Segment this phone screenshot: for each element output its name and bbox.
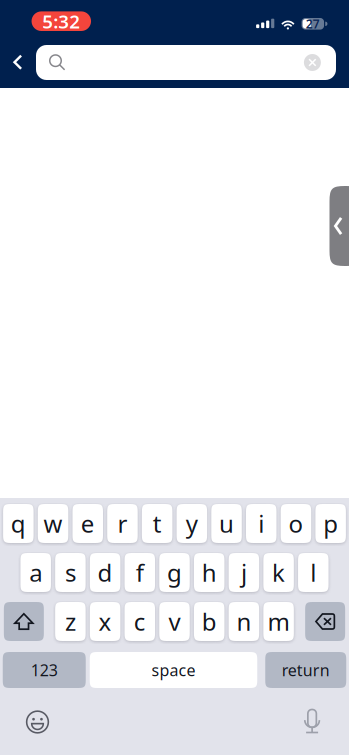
staticText: r	[117, 508, 127, 539]
button[interactable]: Delete	[305, 602, 345, 641]
staticText: q	[11, 508, 26, 539]
button[interactable]: n	[229, 602, 259, 641]
button[interactable]: s	[55, 553, 86, 592]
staticText: z	[65, 606, 76, 637]
staticText: space	[151, 659, 195, 681]
button[interactable]: g	[159, 553, 190, 592]
button[interactable]: q	[3, 504, 34, 543]
button[interactable]: 123	[3, 652, 86, 688]
staticText: p	[323, 508, 338, 539]
button[interactable]: Shift	[4, 602, 44, 641]
staticText: 5:32	[42, 9, 80, 34]
button[interactable]: e	[72, 504, 103, 543]
button[interactable]: f	[124, 553, 155, 592]
staticText: s	[65, 557, 76, 588]
button[interactable]: Emoji	[18, 703, 56, 741]
button[interactable]: k	[263, 553, 294, 592]
staticText: i	[258, 508, 264, 539]
staticText: v	[168, 606, 180, 637]
button[interactable]: z	[55, 602, 86, 641]
staticText: b	[202, 606, 217, 637]
staticText: f	[136, 557, 144, 588]
button[interactable]: t	[142, 504, 172, 543]
button[interactable]: b	[194, 602, 224, 641]
staticText: y	[186, 508, 198, 539]
button[interactable]: h	[194, 553, 224, 592]
button[interactable]: x	[90, 602, 120, 641]
staticText: m	[268, 606, 290, 637]
staticText: l	[310, 557, 316, 588]
staticText: x	[99, 606, 112, 637]
button[interactable]: w	[38, 504, 68, 543]
staticText: c	[134, 606, 146, 637]
button[interactable]: c	[124, 602, 155, 641]
button[interactable]: space	[90, 652, 257, 688]
button[interactable]: p	[315, 504, 346, 543]
staticText: t	[153, 508, 162, 539]
staticText: a	[29, 557, 42, 588]
button[interactable]: v	[159, 602, 190, 641]
button[interactable]: i	[246, 504, 276, 543]
staticText: e	[81, 508, 95, 539]
staticText: 27	[306, 16, 320, 32]
staticText: h	[202, 557, 217, 588]
staticText: 123	[31, 659, 58, 681]
staticText: g	[167, 557, 182, 588]
staticText: return	[282, 659, 330, 681]
button[interactable]: d	[90, 553, 120, 592]
button[interactable]: y	[177, 504, 207, 543]
button[interactable]: l	[298, 553, 328, 592]
button[interactable]: o	[281, 504, 311, 543]
button[interactable]: m	[263, 602, 294, 641]
button[interactable]: Back	[1, 45, 35, 79]
button[interactable]: Dictation	[293, 702, 331, 740]
button[interactable]: u	[211, 504, 242, 543]
staticText: d	[98, 557, 113, 588]
button[interactable]: return	[265, 652, 346, 688]
button[interactable]: j	[229, 553, 259, 592]
staticText: u	[219, 508, 234, 539]
button[interactable]: a	[20, 553, 51, 592]
staticText: w	[43, 508, 62, 539]
button[interactable]: Open side panel	[329, 186, 349, 266]
button[interactable]: r	[107, 504, 138, 543]
staticText: k	[272, 557, 285, 588]
staticText: n	[236, 606, 251, 637]
staticText: j	[241, 557, 247, 588]
staticText: o	[288, 508, 303, 539]
